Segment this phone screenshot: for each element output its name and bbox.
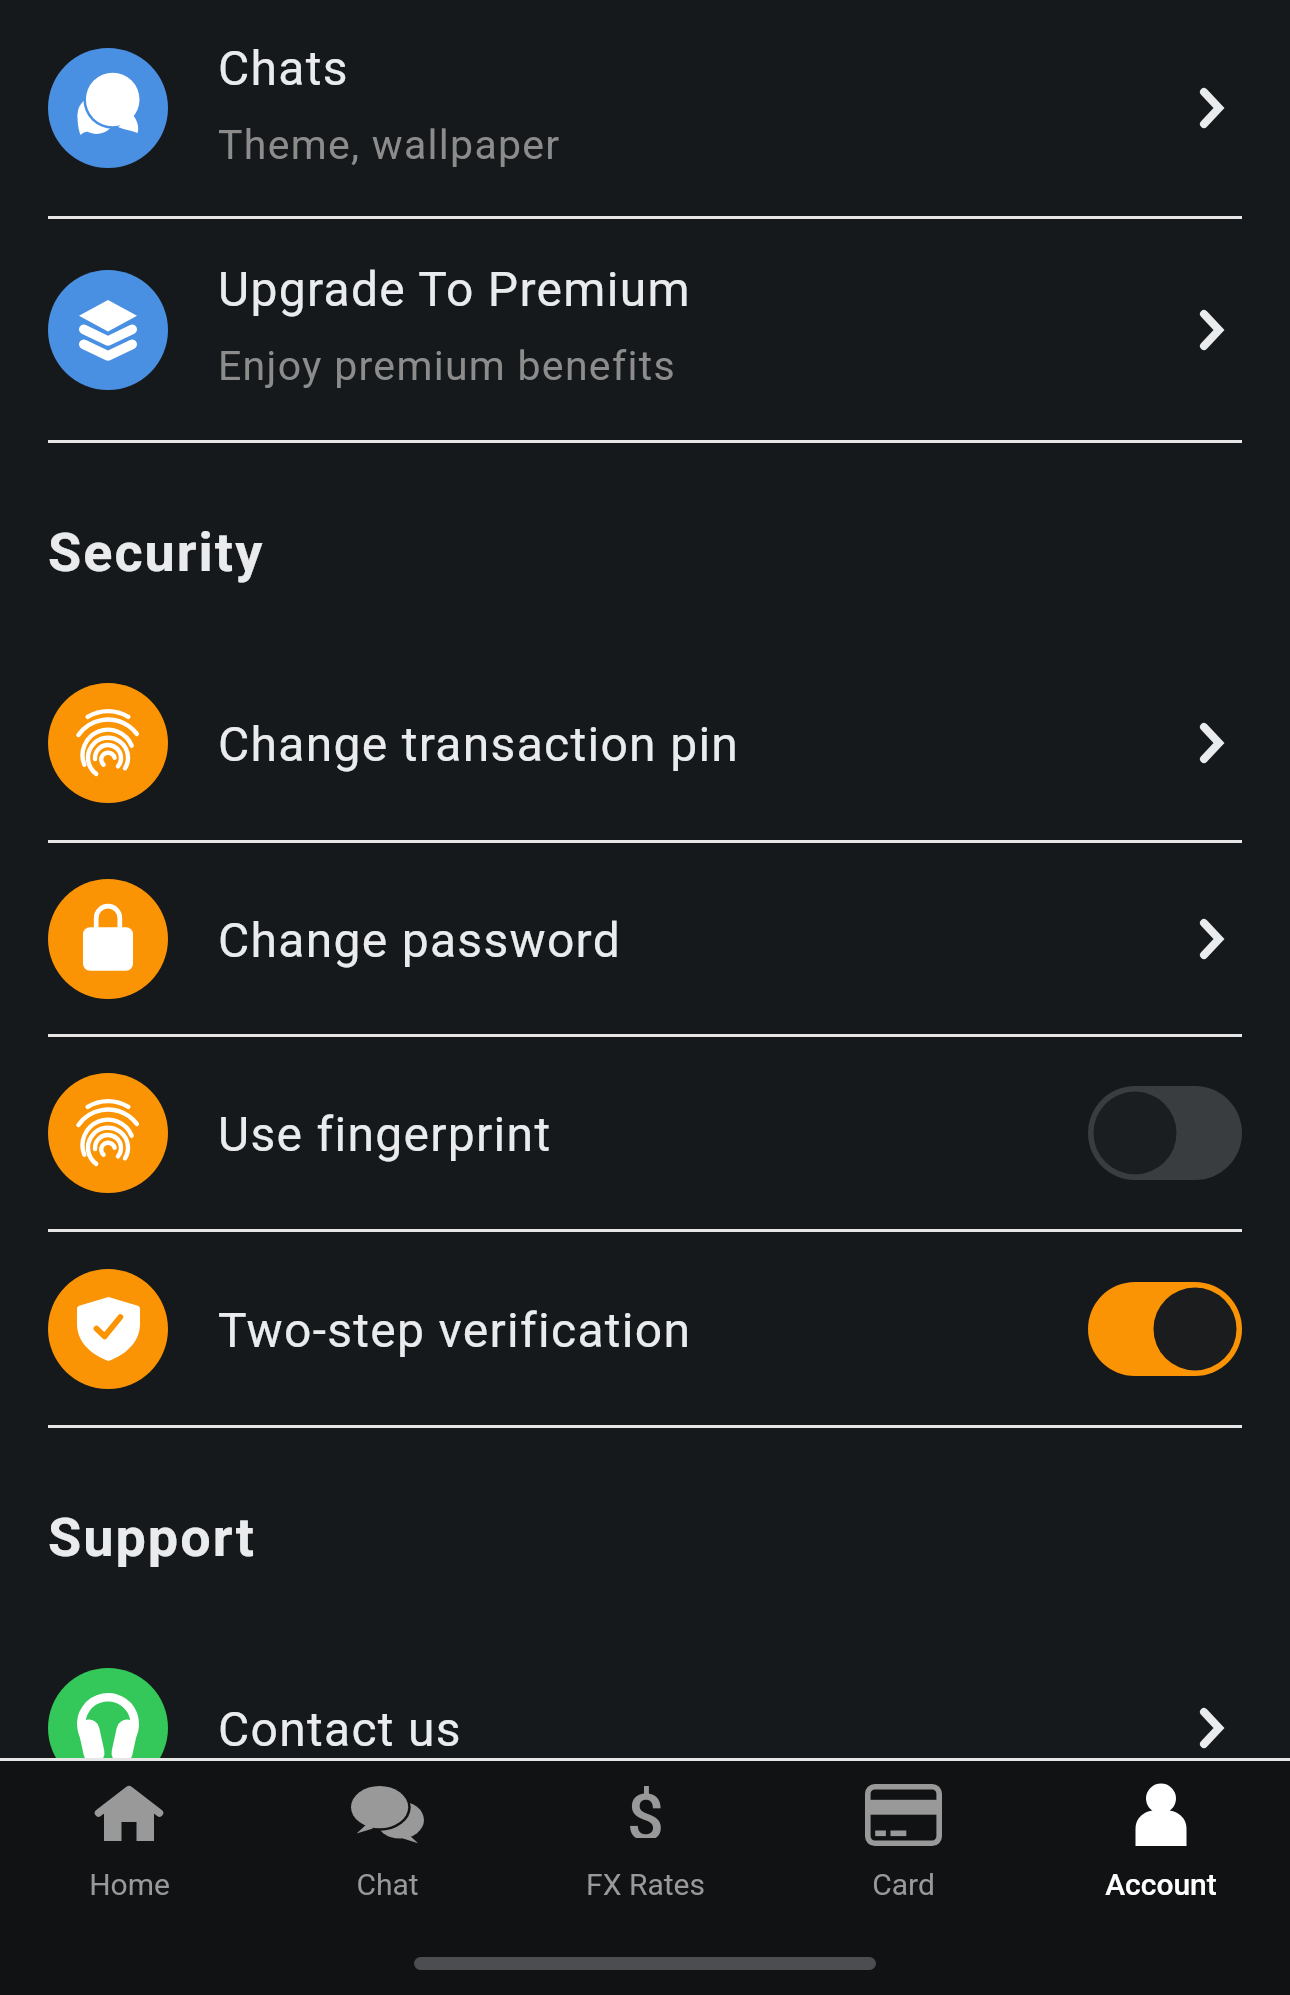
button[interactable]: Two-step verification (0, 1232, 1290, 1425)
other: Open Chats (1200, 88, 1242, 128)
staticText: Two-step verification (218, 1302, 692, 1358)
button[interactable]: $ (516, 1761, 774, 1921)
button[interactable]: Account (1032, 1761, 1290, 1921)
staticText: FX Rates (586, 1867, 705, 1902)
staticText: Card (872, 1867, 935, 1902)
button[interactable]: Chat (258, 1761, 516, 1921)
button[interactable]: Use fingerprint (0, 1037, 1290, 1229)
other: Open Change password (1200, 919, 1242, 959)
staticText: Chats (218, 40, 349, 96)
other: Open Change transaction pin (1200, 723, 1242, 763)
button[interactable]: Use fingerprint off (1088, 1086, 1242, 1180)
button[interactable]: Card (774, 1761, 1032, 1921)
staticText: Chat (356, 1867, 419, 1902)
button[interactable]: Chats (0, 0, 1290, 216)
staticText: Support (48, 1506, 257, 1569)
button[interactable]: Change password (0, 843, 1290, 1034)
other: Open Upgrade To Premium (1200, 310, 1242, 350)
button[interactable]: Two-step verification on (1088, 1282, 1242, 1376)
other: Open Contact us (1200, 1708, 1242, 1748)
staticText: Use fingerprint (218, 1106, 552, 1162)
button[interactable]: Contact us (0, 1631, 1290, 1825)
staticText: Enjoy premium benefits (218, 342, 676, 390)
button[interactable]: Change transaction pin (0, 646, 1290, 840)
button[interactable]: Home (0, 1761, 258, 1921)
staticText: Change password (218, 912, 622, 968)
staticText: Account (1105, 1867, 1217, 1902)
staticText: Upgrade To Premium (218, 261, 691, 317)
button[interactable]: Upgrade To Premium (0, 219, 1290, 440)
staticText: $ (627, 1780, 664, 1838)
staticText: Security (48, 521, 265, 584)
staticText: Theme, wallpaper (218, 121, 561, 169)
staticText: Contact us (218, 1701, 462, 1757)
staticText: Home (89, 1867, 170, 1902)
staticText: Change transaction pin (218, 716, 740, 772)
